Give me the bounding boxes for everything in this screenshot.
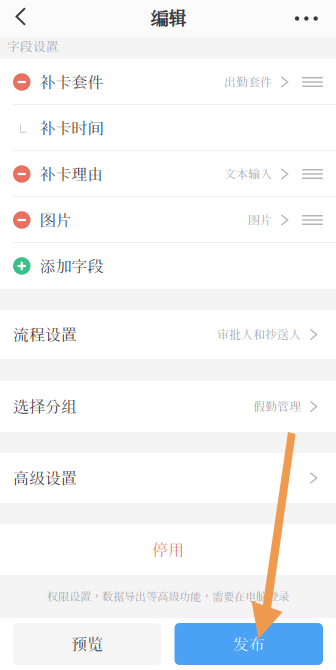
button[interactable]: More options [279,6,336,31]
staticText: 补卡套件 [39,72,103,92]
button[interactable]: 图片 [0,197,336,243]
button[interactable]: 添加字段 [0,243,336,289]
staticText: 流程设置 [13,325,77,344]
staticText: 假勤管理 [253,399,301,414]
staticText: 补卡时间 [39,118,103,138]
staticText: 字段设置 [7,39,59,54]
button[interactable]: 补卡理由 [0,151,336,197]
staticText: 编辑 [150,7,186,29]
button[interactable]: 流程设置 [0,310,336,359]
staticText: 文本输入 [224,167,272,181]
button[interactable]: 补卡时间 [0,105,336,151]
staticText: 权限设置，数据导出等高级功能，需要在电脑登录 [47,590,289,603]
staticText: 出勤套件 [224,75,272,89]
button[interactable]: 预览 [13,623,161,665]
staticText: 高级设置 [13,468,77,488]
staticText: 停用 [152,540,184,559]
button[interactable]: 选择分组 [0,381,336,432]
button[interactable]: 发布 [174,623,323,665]
button[interactable]: 高级设置 [0,453,336,503]
staticText: 选择分组 [13,397,77,416]
staticText: 图片 [39,210,71,230]
staticText: 添加字段 [39,256,103,276]
button[interactable]: Back [0,1,42,36]
button[interactable]: 停用 [0,524,336,575]
button[interactable]: 补卡套件 [0,59,336,105]
staticText: 发布 [233,634,265,654]
staticText: 图片 [248,213,272,227]
staticText: 补卡理由 [39,164,103,184]
staticText: 预览 [71,634,103,654]
staticText: 审批人和抄送人 [217,327,301,342]
